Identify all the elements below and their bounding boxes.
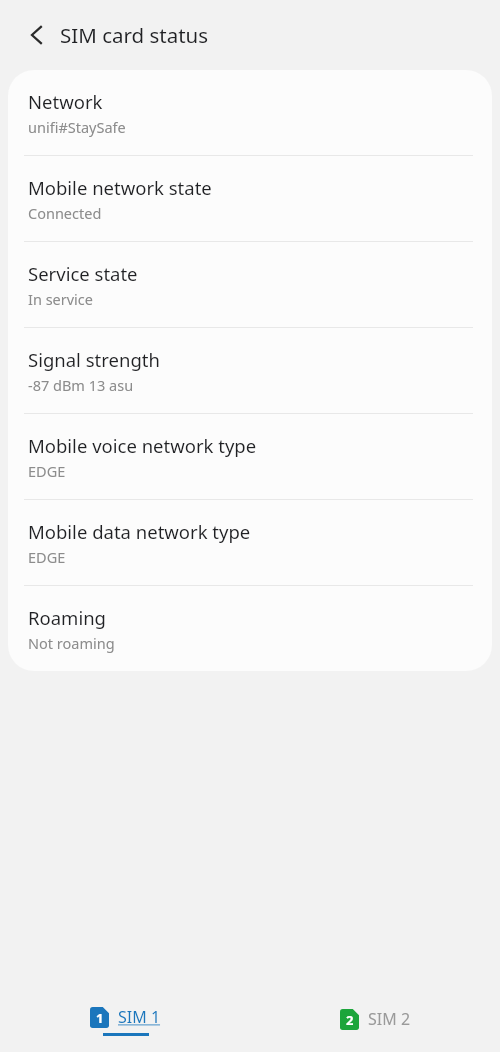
button[interactable]: Mobile voice network type [8, 414, 492, 500]
staticText: Not roaming [28, 633, 115, 653]
button[interactable]: Network [8, 70, 492, 156]
staticText: Mobile data network type [28, 519, 251, 544]
staticText: Service state [28, 261, 138, 286]
staticText: EDGE [28, 547, 66, 567]
button[interactable]: Mobile network state [8, 156, 492, 242]
staticText: Network [28, 89, 103, 114]
staticText: 2 [346, 1011, 354, 1029]
staticText: SIM card status [60, 21, 209, 49]
staticText: Mobile network state [28, 175, 212, 200]
button[interactable]: Mobile data network type [8, 500, 492, 586]
staticText: Roaming [28, 605, 106, 630]
button[interactable]: Service state [8, 242, 492, 328]
staticText: SIM 1 [118, 1006, 161, 1028]
button[interactable]: 1 [90, 990, 161, 1052]
button[interactable]: Roaming [8, 586, 492, 671]
staticText: Connected [28, 203, 102, 223]
button[interactable]: Signal strength [8, 328, 492, 414]
staticText: 1 [96, 1009, 104, 1027]
staticText: In service [28, 289, 94, 309]
staticText: Mobile voice network type [28, 433, 257, 458]
staticText: Signal strength [28, 347, 160, 372]
button[interactable]: Back [18, 16, 56, 54]
staticText: EDGE [28, 461, 66, 481]
staticText: unifi#StaySafe [28, 117, 126, 137]
button[interactable]: 2 [340, 990, 411, 1052]
staticText: SIM 2 [368, 1008, 411, 1030]
staticText: -87 dBm 13 asu [28, 375, 134, 395]
